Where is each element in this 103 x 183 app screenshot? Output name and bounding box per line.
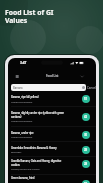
button[interactable] (79, 74, 85, 79)
staticText: Beverages (11, 151, 22, 154)
button[interactable] (14, 74, 20, 79)
staticText: Groenlake Smoothies Banana & Honey (11, 146, 57, 150)
staticText: Overall food guidance (11, 120, 33, 123)
staticText: 51 (84, 97, 88, 101)
button[interactable] (8, 93, 96, 104)
staticText: Cookies, biscuits and crackers (11, 168, 40, 171)
button[interactable]: Cancel (87, 84, 96, 91)
staticText: 28 (84, 148, 88, 152)
staticText: 28 (84, 162, 88, 166)
staticText: 52 (84, 182, 88, 183)
button[interactable] (8, 144, 96, 155)
staticText: Banana, ripe (all yellow) (11, 95, 39, 99)
staticText: cookies (11, 163, 20, 167)
staticText: Banana, slightly under ripe (yellow with… (11, 111, 65, 115)
staticText: Food List (46, 74, 59, 78)
staticText: Food List of GI (5, 8, 54, 17)
staticText: Values (5, 16, 28, 25)
staticText: Overall food guidance (11, 136, 33, 139)
staticText: Banana (13, 86, 23, 90)
button[interactable] (8, 129, 96, 140)
staticText: Cancel (87, 86, 96, 90)
staticText: 3:47 (20, 61, 27, 65)
button[interactable] (8, 174, 96, 183)
staticText: Granilla Banana, Oats and Honey, digesti… (11, 159, 62, 163)
staticText: Overall food guidance (11, 101, 33, 104)
staticText: Green banana, fried (11, 176, 35, 180)
staticText: 30 (84, 133, 88, 137)
staticText: sections) (11, 115, 22, 119)
button[interactable] (8, 109, 96, 124)
staticText: Banana, under ripe (11, 131, 34, 135)
button[interactable]: Banana (11, 84, 86, 91)
staticText: 42 (84, 115, 88, 119)
button[interactable] (8, 157, 96, 172)
